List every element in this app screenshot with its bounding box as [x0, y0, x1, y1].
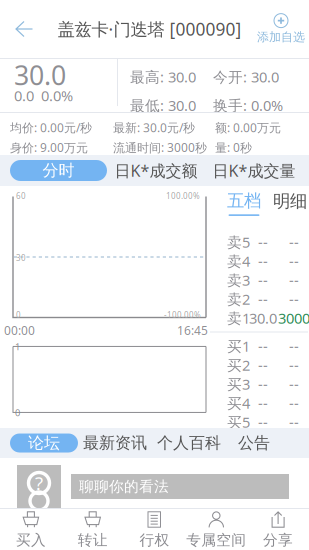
staticText: -- — [258, 251, 268, 271]
staticText: -- — [258, 270, 268, 290]
staticText: -- — [258, 289, 268, 309]
button[interactable]: 最新资讯 — [78, 433, 152, 452]
button[interactable]: 分时 — [10, 160, 107, 181]
staticText: 卖5 — [227, 232, 250, 252]
button[interactable]: Back — [1, 6, 47, 52]
staticText: -- — [258, 336, 268, 356]
staticText: 买2 — [227, 355, 250, 375]
button[interactable]: 分享 — [247, 509, 309, 550]
staticText: 卖1 — [227, 308, 250, 328]
staticText: 身价: 9.00万元 — [10, 139, 88, 155]
staticText: 行权 — [139, 531, 169, 549]
button[interactable]: 个人百科 — [152, 433, 226, 452]
button[interactable]: 添加自选 — [253, 6, 309, 52]
staticText: 买4 — [227, 393, 250, 413]
staticText: -100.00% — [164, 309, 201, 320]
staticText: 买入 — [16, 531, 46, 549]
staticText: 五档 — [227, 190, 261, 211]
staticText: 100.00% — [166, 190, 200, 201]
staticText: 30.0 — [249, 308, 277, 328]
staticText: -- — [289, 270, 299, 290]
staticText: -- — [258, 412, 268, 432]
staticText: 最高: 30.0 — [130, 67, 196, 86]
staticText: 今开: 30.0 — [213, 67, 279, 86]
staticText: -- — [289, 232, 299, 252]
staticText: -- — [289, 393, 299, 413]
button[interactable]: 日K*成交额 — [107, 160, 205, 181]
staticText: -- — [289, 251, 299, 271]
button[interactable]: 买入 — [0, 509, 62, 550]
button[interactable]: 聊聊你的看法 — [71, 474, 289, 499]
staticText: -- — [258, 393, 268, 413]
staticText: 卖4 — [227, 251, 250, 271]
staticText: -- — [258, 374, 268, 394]
staticText: 30.0 — [14, 57, 66, 93]
staticText: -- — [289, 374, 299, 394]
staticText: 买1 — [227, 336, 250, 356]
staticText: 0.0% — [41, 86, 73, 105]
staticText: 最新资讯 — [83, 433, 147, 453]
staticText: ? — [35, 471, 43, 495]
staticText: 16:45 — [177, 322, 208, 338]
staticText: -- — [258, 232, 268, 252]
staticText: 换手: 0.0% — [213, 95, 283, 115]
staticText: 论坛 — [28, 433, 60, 453]
staticText: -- — [289, 289, 299, 309]
staticText: 量: 0秒 — [215, 139, 252, 155]
staticText: 0 — [16, 309, 21, 320]
staticText: 分时 — [42, 161, 74, 180]
staticText: 公告 — [238, 433, 270, 453]
staticText: 明细 — [273, 190, 307, 212]
staticText: 添加自选 — [257, 30, 305, 44]
staticText: 3000 — [278, 308, 309, 328]
staticText: 00:00 — [4, 322, 35, 338]
staticText: 专属空间 — [186, 531, 246, 549]
staticText: 1 — [15, 340, 20, 353]
button[interactable]: 五档 — [222, 190, 266, 215]
staticText: 最低: 30.0 — [130, 95, 196, 115]
button[interactable]: 明细 — [268, 190, 309, 215]
staticText: 30 — [16, 252, 26, 263]
staticText: 流通时间: 3000秒 — [113, 139, 207, 155]
button[interactable]: 日K*成交量 — [205, 160, 303, 181]
button[interactable]: 行权 — [124, 509, 185, 550]
staticText: 买3 — [227, 374, 250, 394]
staticText: 最新: 30.0元/秒 — [113, 120, 195, 135]
staticText: 聊聊你的看法 — [79, 477, 169, 495]
staticText: -- — [289, 355, 299, 375]
button[interactable]: 公告 — [226, 433, 282, 452]
staticText: 盖兹卡·门迭塔 [000090] — [57, 17, 241, 40]
staticText: 0 — [15, 406, 20, 419]
staticText: 卖2 — [227, 289, 250, 309]
staticText: 买5 — [227, 412, 250, 432]
staticText: 0.0 — [14, 86, 34, 105]
staticText: 个人百科 — [157, 433, 221, 453]
staticText: 均价: 0.00元/秒 — [10, 120, 92, 135]
button[interactable]: 转让 — [62, 509, 124, 550]
staticText: 转让 — [78, 531, 108, 549]
staticText: -- — [258, 355, 268, 375]
staticText: -- — [289, 412, 299, 432]
button[interactable]: 论坛 — [10, 433, 78, 452]
button[interactable]: 专属空间 — [185, 509, 247, 550]
staticText: 额: 0.00万元 — [215, 120, 281, 135]
staticText: 日K*成交额 — [114, 160, 197, 181]
staticText: 卖3 — [227, 270, 250, 290]
staticText: 分享 — [263, 531, 293, 549]
staticText: 60 — [16, 190, 26, 201]
staticText: -- — [289, 336, 299, 356]
staticText: 日K*成交量 — [212, 160, 295, 181]
